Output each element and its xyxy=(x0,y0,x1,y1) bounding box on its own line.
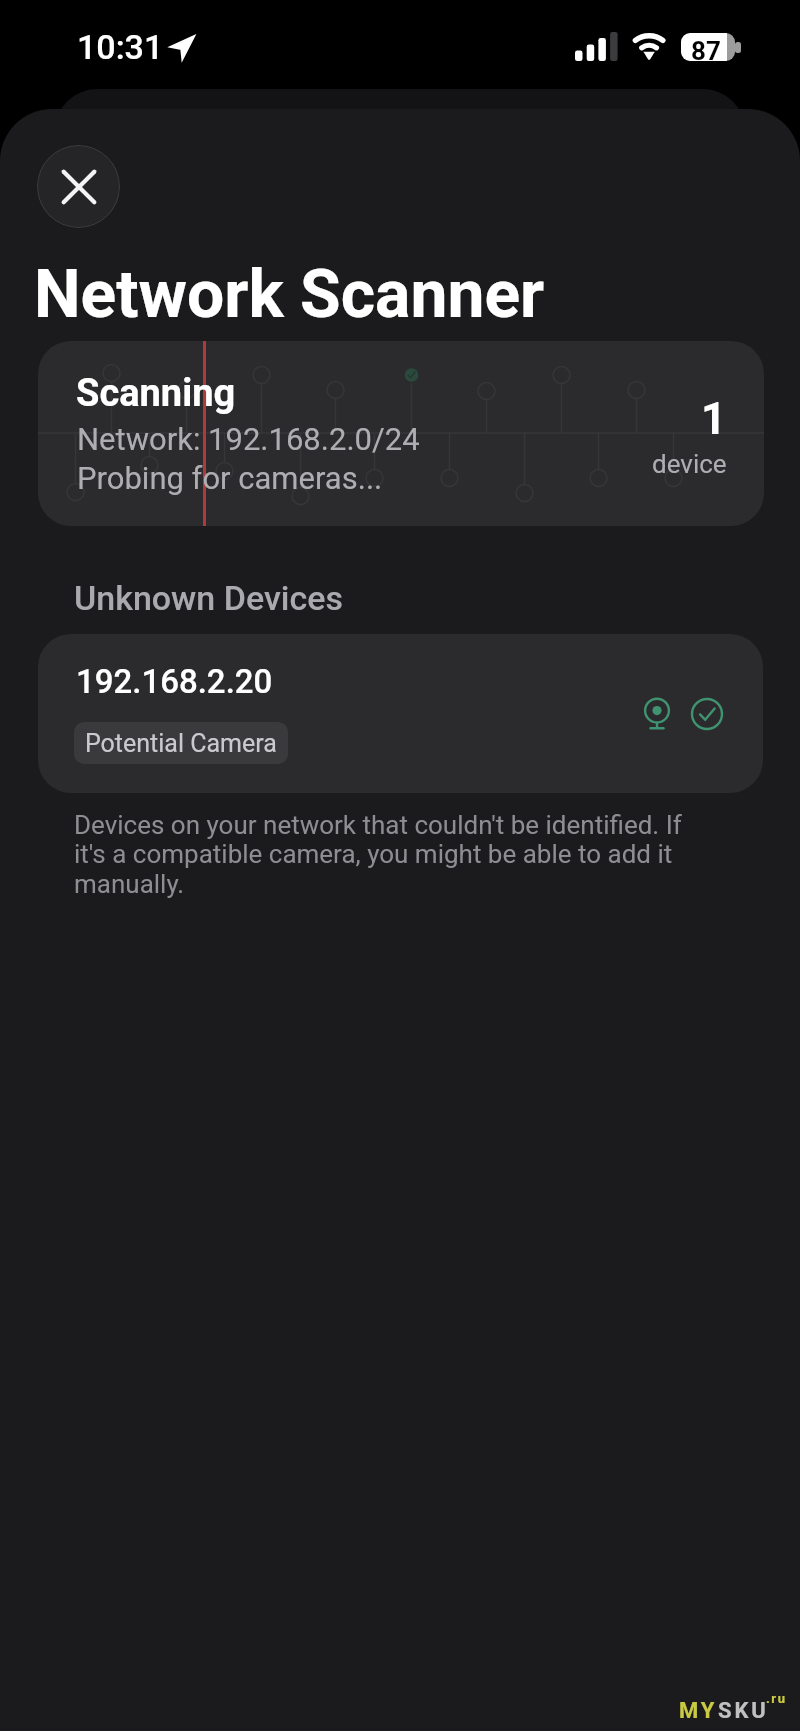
staticText: MY xyxy=(679,1698,718,1724)
button[interactable]: Close xyxy=(37,145,120,228)
staticText: 10:31 xyxy=(77,27,164,67)
staticText: Potential Camera xyxy=(85,729,277,758)
button[interactable]: Camera xyxy=(634,690,680,736)
staticText: device xyxy=(652,449,727,479)
staticText: Network: 192.168.2.0/24 xyxy=(77,421,420,457)
staticText: Unknown Devices xyxy=(74,578,343,618)
staticText: 192.168.2.20 xyxy=(76,662,273,701)
button[interactable]: Confirm xyxy=(684,691,730,737)
button[interactable]: Scanning xyxy=(38,341,764,526)
staticText: 1 xyxy=(701,393,727,445)
staticText: SKU xyxy=(718,1698,769,1724)
staticText: Probing for cameras... xyxy=(77,460,383,496)
staticText: 87 xyxy=(691,36,721,61)
staticText: Scanning xyxy=(76,371,236,416)
staticText: Devices on your network that couldn't be… xyxy=(74,810,699,900)
button[interactable]: 192.168.2.20 xyxy=(38,634,763,793)
staticText: .ru xyxy=(766,1691,787,1706)
staticText: Network Scanner xyxy=(34,256,545,333)
